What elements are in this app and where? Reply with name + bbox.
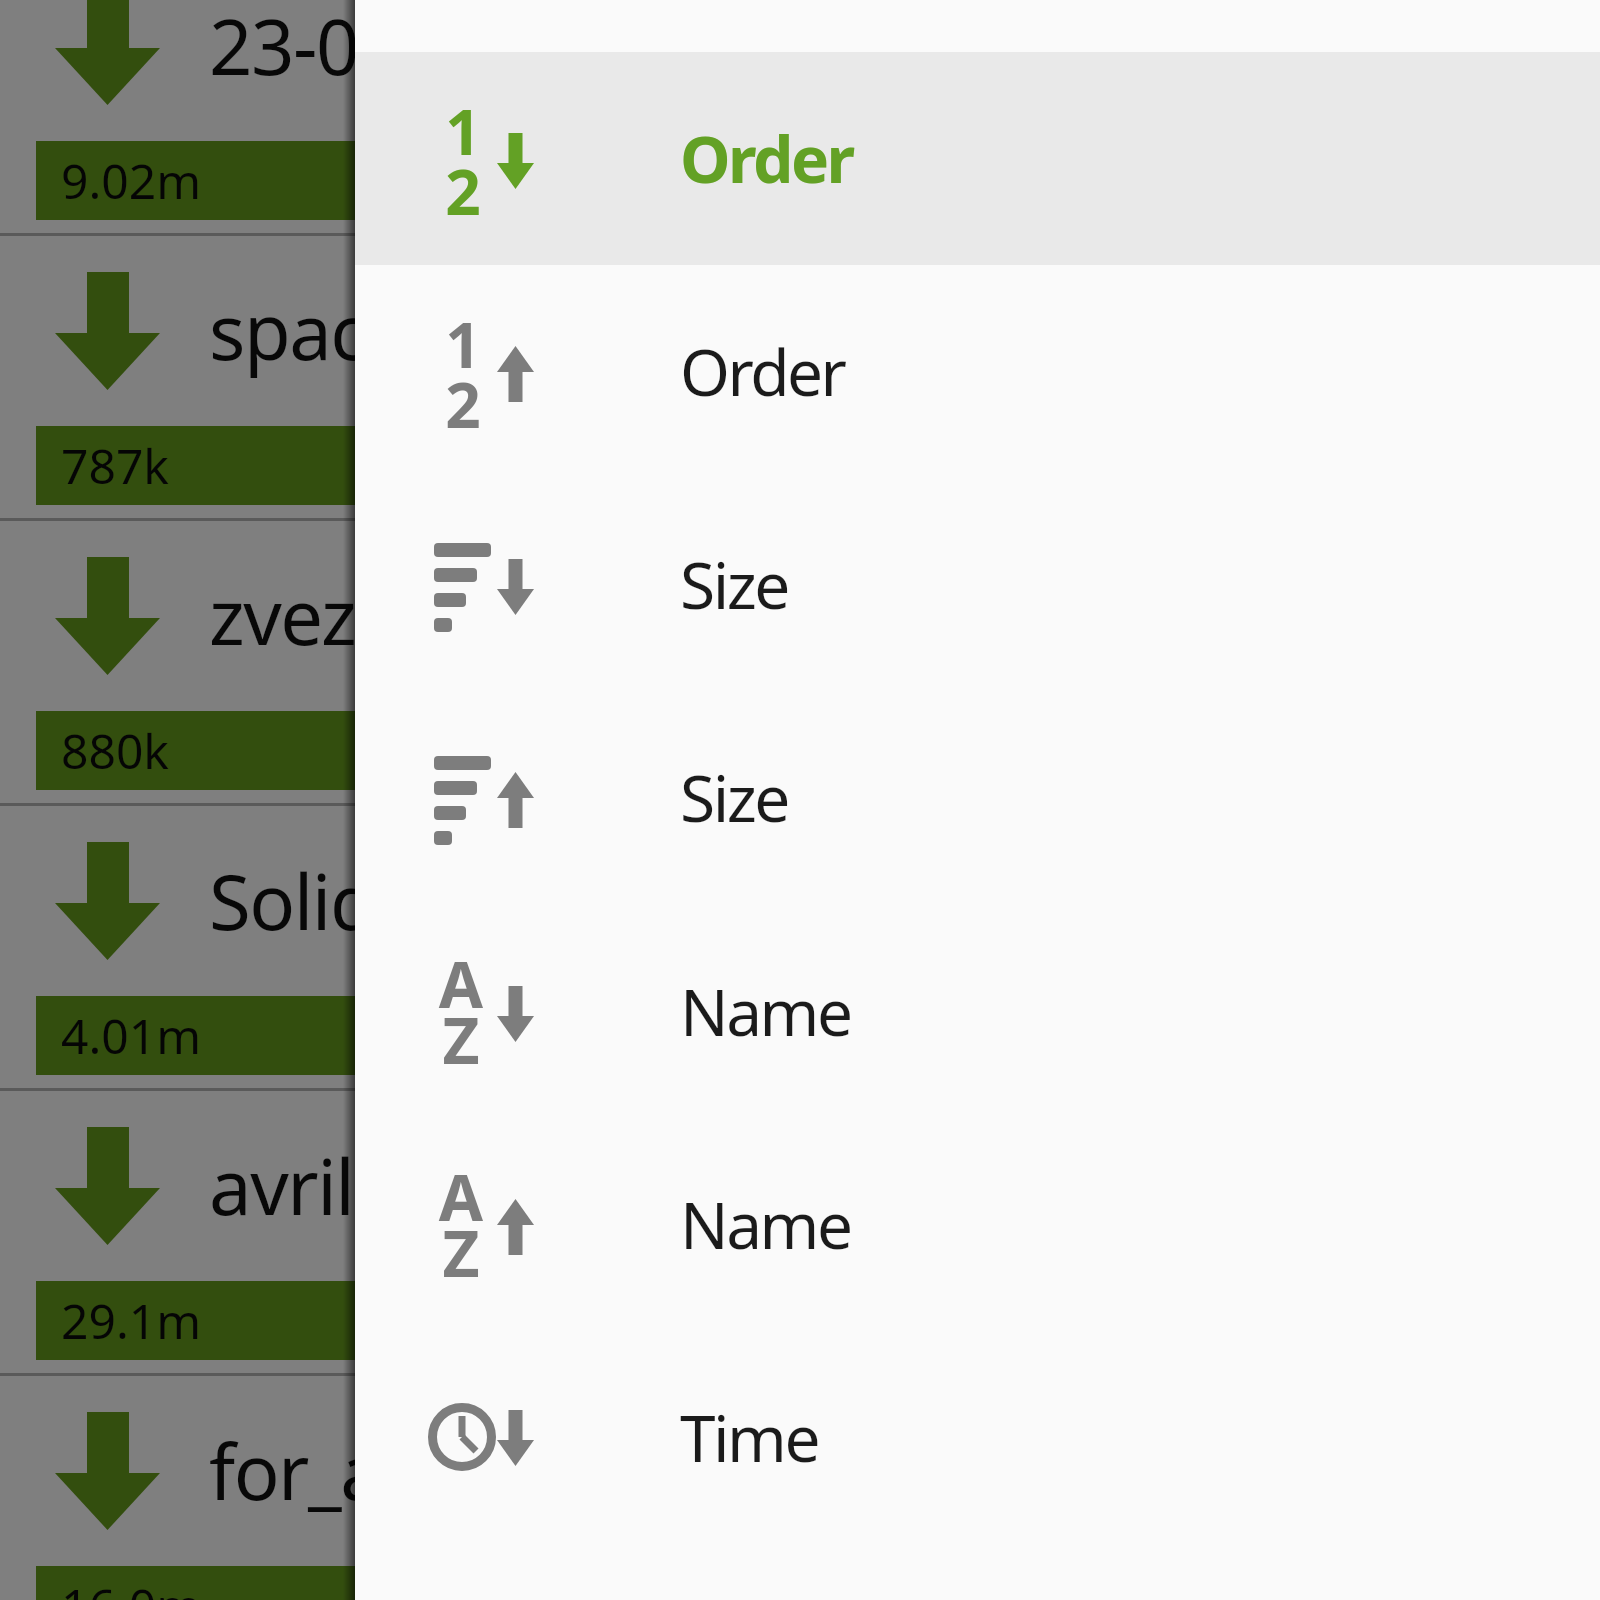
button[interactable]: Time	[355, 1331, 1600, 1544]
staticText: 880k	[61, 718, 170, 783]
staticText: 1	[443, 302, 483, 386]
staticText: A	[435, 940, 487, 1027]
staticText: Solid	[209, 849, 376, 953]
staticText: Z	[435, 996, 487, 1083]
staticText: 2	[443, 149, 483, 233]
staticText: 4.01m	[61, 1003, 202, 1068]
button[interactable]: A	[355, 905, 1600, 1118]
staticText: 16.0m	[61, 1573, 202, 1600]
staticText: avril-l	[209, 1134, 395, 1238]
staticText: Size	[680, 541, 788, 628]
button[interactable]: 1	[355, 265, 1600, 478]
staticText: 23-08-2015	[209, 0, 591, 98]
staticText: for_a	[209, 1419, 382, 1523]
staticText: Name	[680, 968, 851, 1055]
staticText: 29.1m	[61, 1288, 202, 1353]
staticText: zvezda	[209, 564, 442, 668]
staticText: Order	[680, 328, 845, 415]
staticText: Z	[435, 1209, 487, 1296]
button[interactable]: 1	[355, 52, 1600, 265]
staticText: space	[209, 279, 407, 383]
staticText: 9.02m	[61, 148, 202, 213]
button[interactable]: A	[355, 1118, 1600, 1331]
button[interactable]: Size	[355, 691, 1600, 904]
staticText: 2	[443, 362, 483, 446]
staticText: 787k	[61, 433, 170, 498]
staticText: Time	[680, 1394, 819, 1481]
staticText: Order	[680, 115, 853, 202]
staticText: Name	[680, 1181, 851, 1268]
staticText: A	[435, 1153, 487, 1240]
button[interactable]: Size	[355, 478, 1600, 691]
staticText: Size	[680, 754, 788, 841]
staticText: 1	[443, 89, 483, 173]
